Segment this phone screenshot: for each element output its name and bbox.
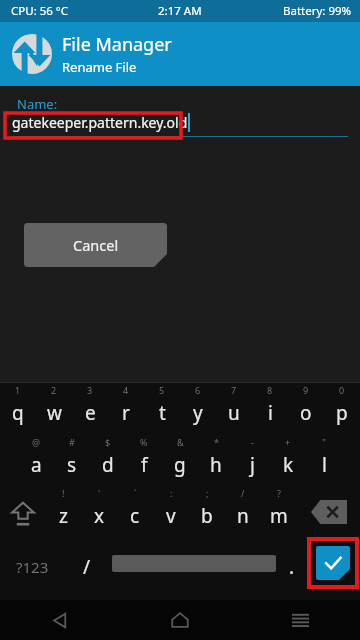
button[interactable]: * [198,435,234,486]
staticText: ' [98,487,101,499]
staticText: Cancel [73,235,119,255]
staticText: gatekeeper.pattern.key.old [12,113,188,132]
staticText: 9 [303,384,309,396]
staticText: CPU: 56 °C [11,3,69,19]
staticText: " [322,436,326,448]
staticText: j [250,452,255,478]
button[interactable]: 6 [180,383,216,435]
button[interactable]: Backspace [297,486,360,537]
staticText: q [12,400,24,426]
staticText: Battery: 99% [283,3,352,19]
staticText: 2:17 AM [158,3,202,19]
button[interactable]: : [153,486,189,537]
staticText: h [210,452,222,478]
other: File Manager icon [12,34,52,74]
button[interactable]: / [225,486,261,537]
staticText: d [102,452,114,478]
button[interactable]: + [270,435,306,486]
button[interactable]: 3 [72,383,108,435]
staticText: - [251,436,254,448]
button[interactable]: Home [120,600,240,640]
button[interactable]: Cancel [24,223,167,267]
staticText: e [85,400,96,426]
button[interactable]: Back [0,600,120,640]
staticText: n [237,503,249,529]
staticText: f [141,452,148,478]
button[interactable]: . [278,537,306,589]
staticText: g [174,452,186,478]
staticText: i [268,400,273,426]
staticText: @ [32,436,41,448]
staticText: ? [277,487,281,499]
button[interactable]: % [126,435,162,486]
staticText: b [201,503,213,529]
button[interactable]: ` [117,486,153,537]
button[interactable]: $ [90,435,126,486]
staticText: 4 [123,384,129,396]
staticText: 6 [195,384,201,396]
staticText: 5 [159,384,165,396]
button[interactable]: ; [189,486,225,537]
staticText: # [69,436,75,448]
button[interactable]: ' [81,486,117,537]
staticText: & [177,436,184,448]
button[interactable]: Enter [316,546,350,580]
button[interactable]: Space [110,537,278,589]
staticText: Rename File [62,58,137,76]
button[interactable]: ! [45,486,81,537]
staticText: t [159,400,166,426]
button[interactable]: 2 [36,383,72,435]
button[interactable]: ? [261,486,297,537]
staticText: % [140,436,148,448]
button[interactable]: - [234,435,270,486]
staticText: / [83,554,91,580]
button[interactable]: " [306,435,342,486]
button[interactable]: ?123 [0,537,64,589]
staticText: $ [105,436,111,448]
staticText: ?123 [16,557,49,577]
staticText: p [336,400,348,426]
staticText: : [170,487,173,499]
staticText: / [241,487,245,499]
staticText: r [122,400,130,426]
staticText: + [285,436,291,448]
button[interactable]: 7 [216,383,252,435]
staticText: Name: [17,95,58,113]
staticText: x [94,503,105,529]
button[interactable]: & [162,435,198,486]
staticText: . [289,554,295,580]
staticText: o [300,400,312,426]
button[interactable]: 9 [288,383,324,435]
staticText: z [59,503,68,529]
staticText: a [31,452,42,478]
staticText: m [270,503,288,529]
staticText: u [228,400,240,426]
staticText: ` [134,487,137,499]
staticText: ; [206,487,209,499]
staticText: w [47,400,62,426]
staticText: * [214,436,219,448]
staticText: v [166,503,176,529]
staticText: c [130,503,140,529]
staticText: 3 [87,384,93,396]
staticText: 8 [267,384,273,396]
button[interactable]: 5 [144,383,180,435]
button[interactable]: # [54,435,90,486]
staticText: File Manager [62,32,172,57]
staticText: 0 [339,384,345,396]
button[interactable]: 1 [0,383,36,435]
staticText: 1 [15,384,21,396]
button[interactable]: 0 [324,383,360,435]
button[interactable]: Shift [0,486,45,537]
button[interactable]: gatekeeper.pattern.key.old [12,113,190,135]
staticText: s [67,452,77,478]
staticText: l [322,452,327,478]
button[interactable]: 4 [108,383,144,435]
button[interactable]: Recent apps [240,600,360,640]
button[interactable]: @ [18,435,54,486]
staticText: k [283,452,294,478]
staticText: 2 [51,384,57,396]
button[interactable]: 8 [252,383,288,435]
button[interactable]: / [64,537,110,589]
staticText: y [193,400,203,426]
